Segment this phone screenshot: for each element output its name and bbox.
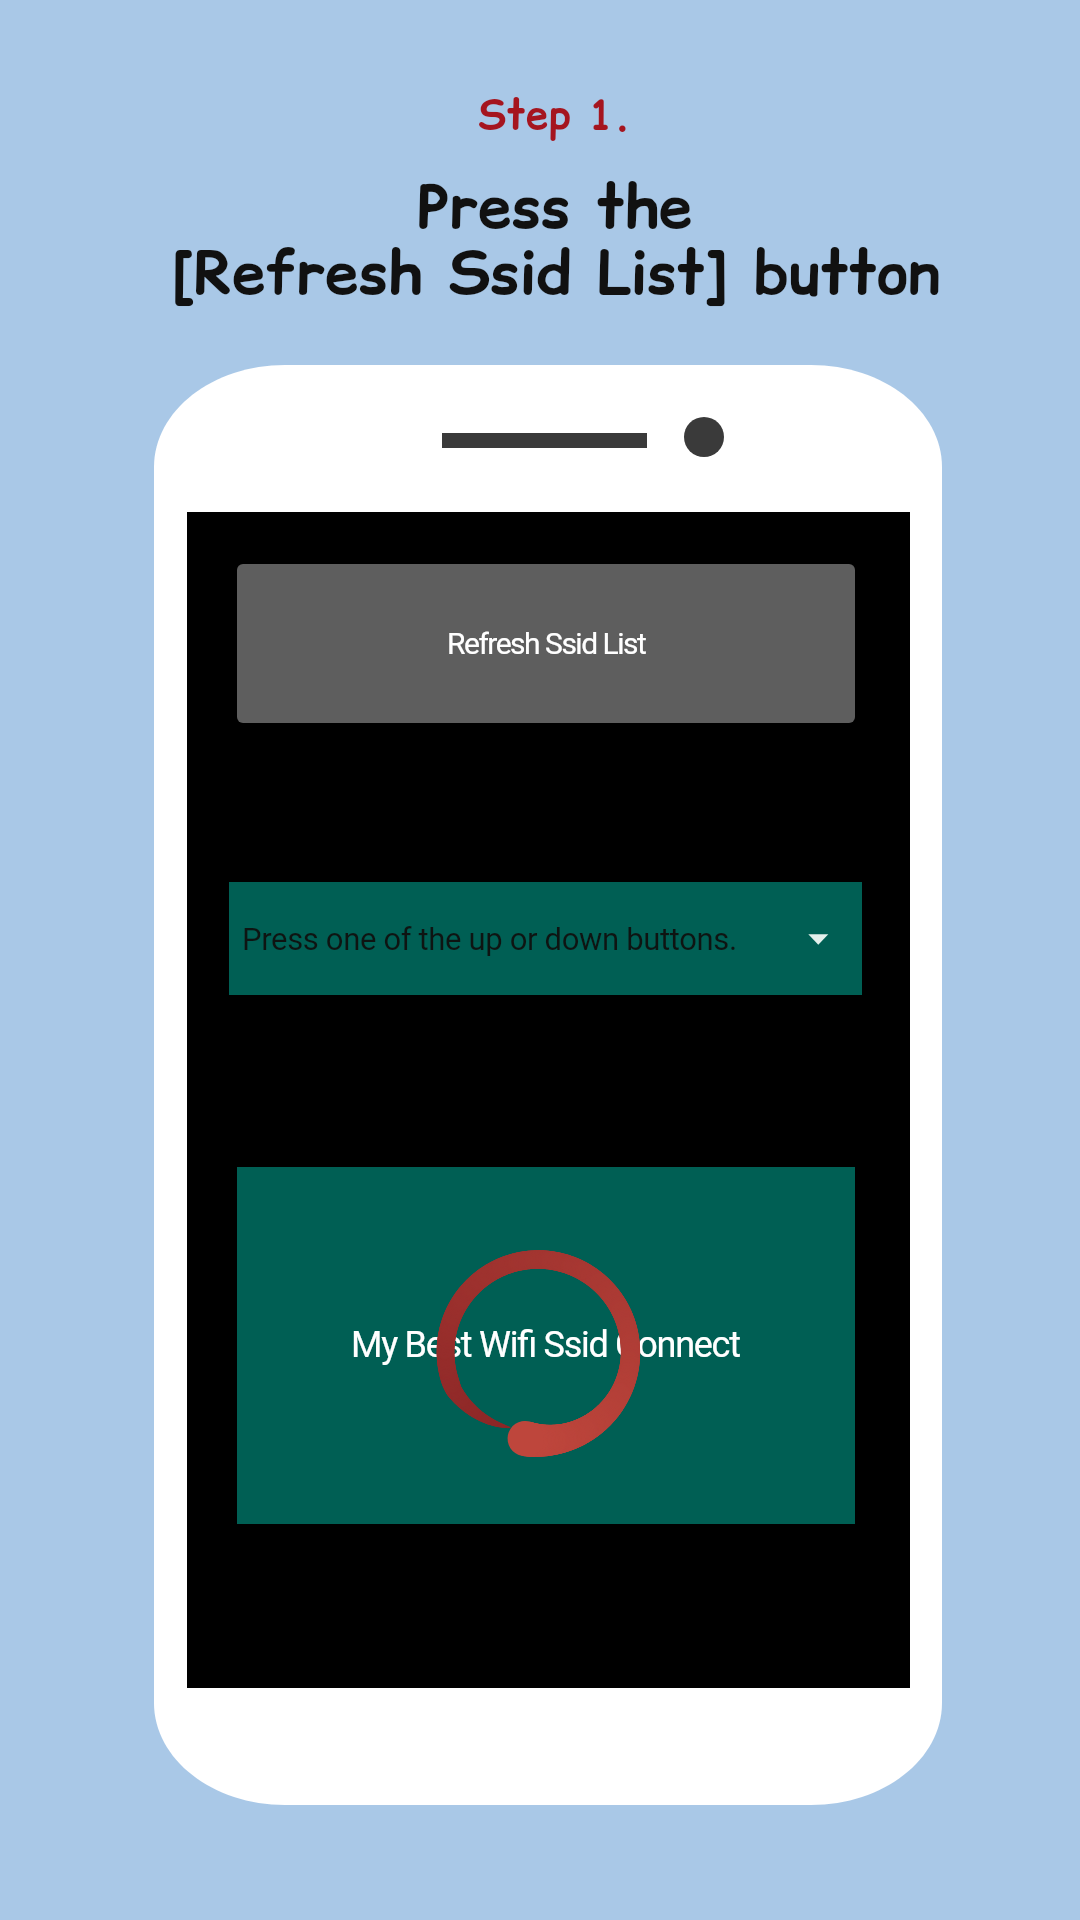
staticText: Press one of the up or down buttons. xyxy=(242,921,737,957)
staticText: Press the xyxy=(417,165,693,249)
button[interactable]: Refresh Ssid List xyxy=(237,564,855,723)
staticText: My Best Wifi Ssid Connect xyxy=(351,1324,740,1366)
button[interactable]: My Best Wifi Ssid Connect xyxy=(237,1167,855,1524)
staticText: [Refresh Ssid List] button xyxy=(171,231,940,315)
button[interactable]: Press one of the up or down buttons. xyxy=(229,882,862,995)
staticText: Refresh Ssid List xyxy=(447,626,646,661)
staticText: Step 1. xyxy=(478,87,632,143)
other: Open dropdown xyxy=(229,882,862,995)
